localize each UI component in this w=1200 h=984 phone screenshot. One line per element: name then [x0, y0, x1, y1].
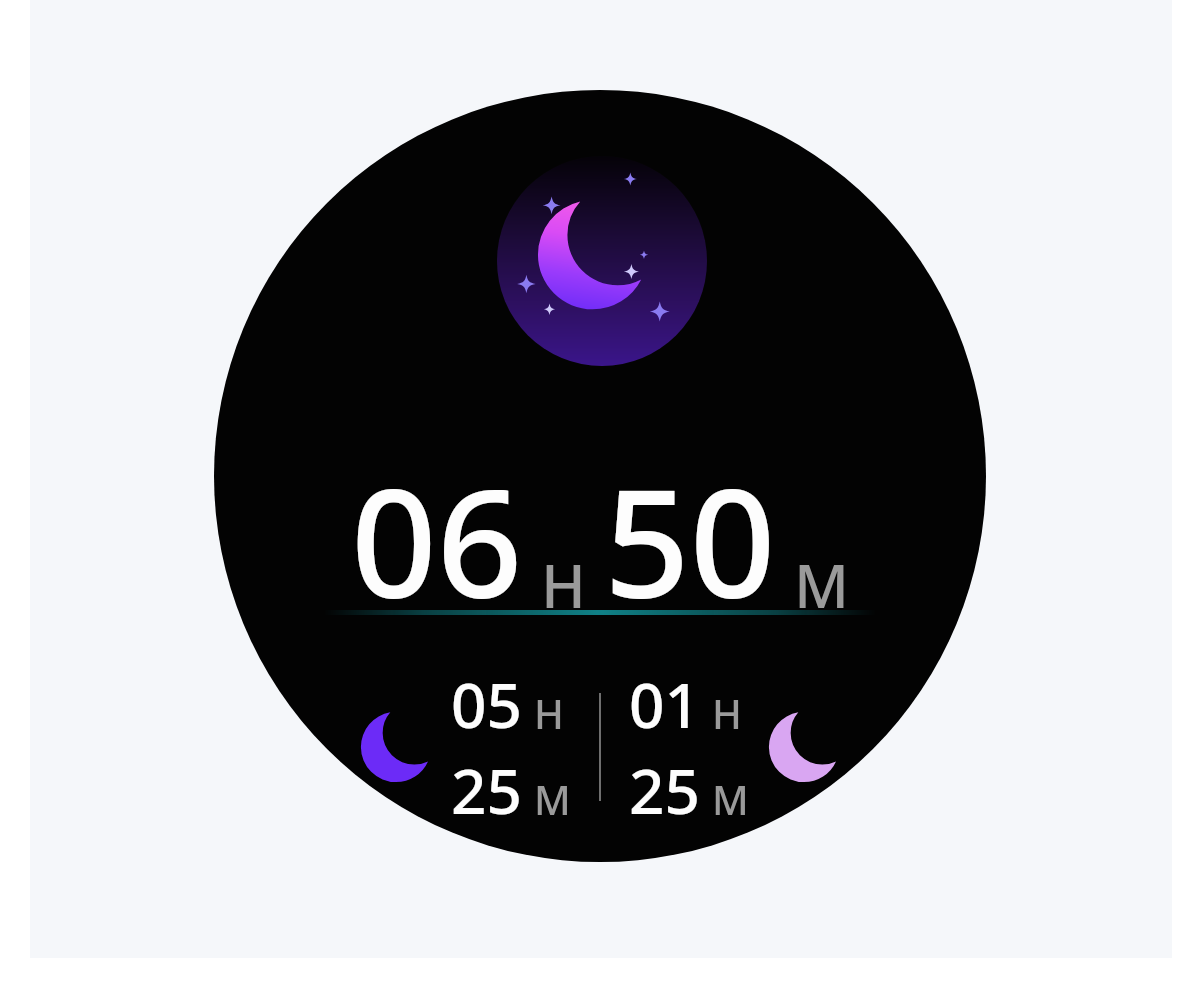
- staticText: M: [534, 772, 571, 826]
- staticText: M: [794, 544, 850, 626]
- staticText: 50: [604, 438, 776, 642]
- staticText: H: [534, 686, 564, 740]
- staticText: H: [541, 544, 586, 626]
- staticText: M: [712, 772, 749, 826]
- staticText: 01: [629, 662, 700, 746]
- staticText: 05: [451, 662, 522, 746]
- staticText: H: [712, 686, 742, 740]
- staticText: 25: [451, 748, 522, 832]
- button[interactable]: 01: [629, 662, 843, 832]
- button[interactable]: Deep sleep: [357, 662, 571, 832]
- button[interactable]: 06: [214, 438, 986, 642]
- staticText: 06: [351, 438, 523, 642]
- staticText: 25: [629, 748, 700, 832]
- other: Light sleep: [765, 708, 843, 786]
- button[interactable]: Sleep: [214, 90, 986, 862]
- other: Deep sleep: [357, 708, 435, 786]
- other: Sleep: [497, 156, 707, 366]
